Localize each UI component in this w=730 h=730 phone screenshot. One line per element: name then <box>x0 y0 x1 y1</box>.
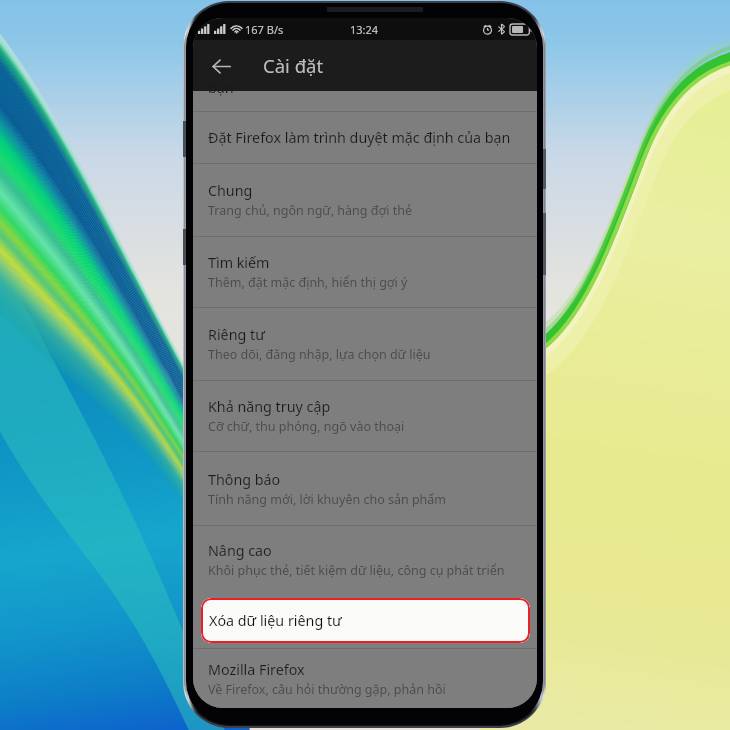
staticText: Mozilla Firefox <box>208 660 305 679</box>
staticText: Cỡ chữ, thu phóng, ngõ vào thoại <box>208 418 405 435</box>
staticText: Về Firefox, câu hỏi thường gặp, phản hồi <box>208 681 446 698</box>
staticText: bạn <box>208 78 234 97</box>
staticText: Thông báo <box>208 470 281 489</box>
staticText: Cài đặt <box>263 53 324 78</box>
staticText: Đặt Firefox làm trình duyệt mặc định của… <box>208 128 511 147</box>
staticText: Theo dõi, đăng nhập, lựa chọn dữ liệu <box>208 346 431 363</box>
staticText: Trang chủ, ngôn ngữ, hàng đợi thẻ <box>208 202 412 219</box>
staticText: Chung <box>208 181 253 200</box>
button[interactable]: Back <box>200 45 242 87</box>
button[interactable]: Tìm kiếm <box>193 237 537 307</box>
staticText: Xóa dữ liệu riêng tư <box>209 611 342 630</box>
button[interactable]: Đặt Firefox làm trình duyệt mặc định của… <box>193 112 537 163</box>
button[interactable]: Thông báo <box>193 452 537 525</box>
button[interactable]: Xóa dữ liệu riêng tư <box>201 598 530 643</box>
button[interactable]: Riêng tư <box>193 308 537 380</box>
staticText: Nâng cao <box>208 541 272 560</box>
button[interactable]: Mozilla Firefox <box>193 649 537 708</box>
staticText: Khôi phục thẻ, tiết kiệm dữ liệu, công c… <box>208 562 505 579</box>
button[interactable]: Khả năng truy cập <box>193 381 537 451</box>
staticText: 167 B/s <box>245 22 284 37</box>
staticText: Thêm, đặt mặc định, hiển thị gợi ý <box>208 274 408 291</box>
staticText: Riêng tư <box>208 325 265 344</box>
staticText: Khả năng truy cập <box>208 397 331 416</box>
staticText: Tính năng mới, lời khuyên cho sản phẩm <box>208 491 447 508</box>
button[interactable]: Nâng cao <box>193 526 537 594</box>
button[interactable]: Chung <box>193 164 537 236</box>
staticText: Tìm kiếm <box>208 253 270 272</box>
staticText: 13:24 <box>350 22 379 37</box>
